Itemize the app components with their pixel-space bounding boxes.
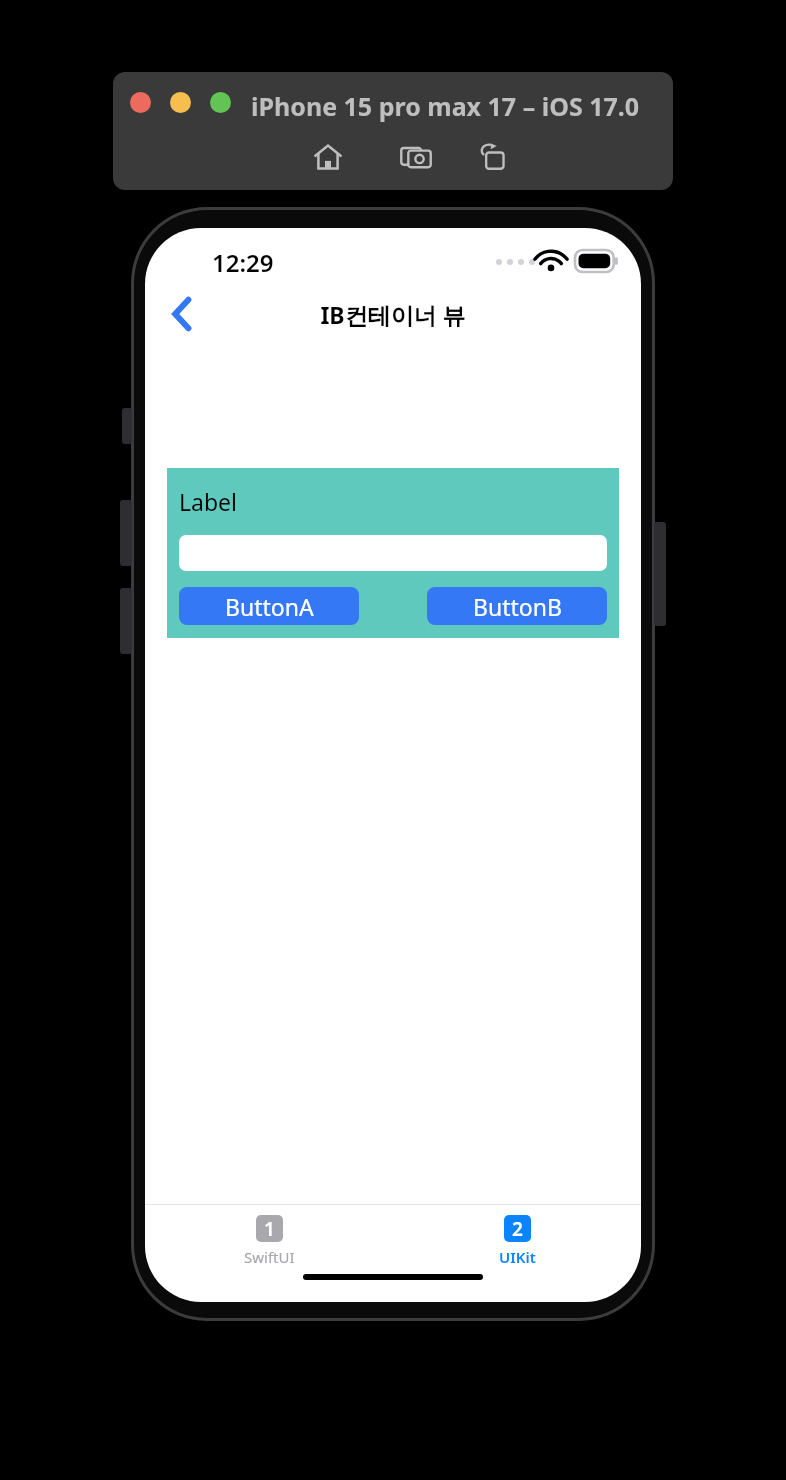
button[interactable]: ButtonA [179, 587, 359, 625]
button[interactable]: Minimize [170, 92, 191, 113]
staticText: 1 [264, 1216, 275, 1242]
staticText: UIKit [499, 1247, 536, 1267]
button[interactable]: Rotate [471, 134, 517, 180]
button[interactable]: Text field [179, 535, 607, 571]
button[interactable]: Maximize [210, 92, 231, 113]
button[interactable]: Back [151, 286, 213, 342]
staticText: 2 [512, 1216, 523, 1242]
button[interactable]: ButtonB [427, 587, 607, 625]
staticText: ButtonA [225, 591, 314, 622]
button[interactable]: Screenshot [393, 134, 439, 180]
staticText: IB컨테이너 뷰 [145, 299, 641, 330]
staticText: iPhone 15 pro max 17 – iOS 17.0 [251, 89, 640, 123]
staticText: SwiftUI [244, 1247, 295, 1267]
staticText: Label [179, 486, 238, 517]
button[interactable]: Home [305, 134, 351, 180]
staticText: ButtonB [473, 591, 562, 622]
button[interactable]: 2 [393, 1205, 641, 1267]
button[interactable]: Close [130, 92, 151, 113]
button[interactable]: 1 [145, 1205, 393, 1267]
staticText: 12:29 [212, 246, 274, 279]
